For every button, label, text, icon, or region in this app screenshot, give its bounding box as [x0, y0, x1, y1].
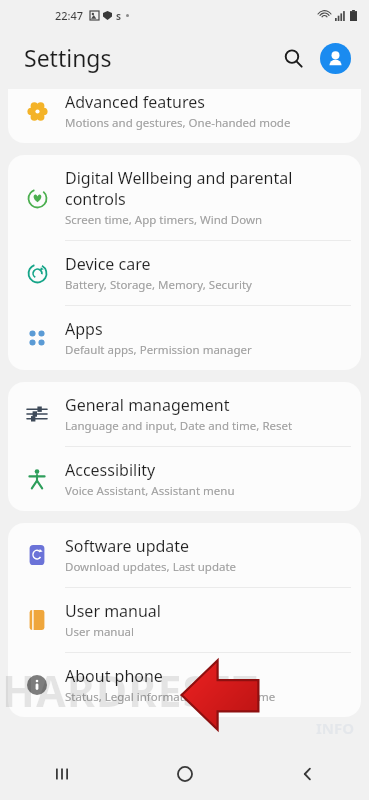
- staticText: Advanced features: [65, 91, 205, 113]
- button[interactable]: User manual: [8, 588, 361, 652]
- button[interactable]: Account: [320, 43, 351, 74]
- staticText: 22:47: [55, 8, 84, 23]
- button[interactable]: Software update: [8, 523, 361, 587]
- staticText: Digital Wellbeing and parental controls: [65, 167, 347, 210]
- button[interactable]: About phone: [8, 653, 361, 717]
- staticText: Download updates, Last update: [65, 559, 237, 575]
- button[interactable]: General management: [8, 382, 361, 446]
- staticText: Device care: [65, 253, 151, 275]
- staticText: Software update: [65, 535, 190, 557]
- button[interactable]: Device care: [8, 241, 361, 305]
- button[interactable]: Recent apps: [38, 750, 86, 798]
- staticText: Accessibility: [65, 459, 156, 481]
- staticText: Motions and gestures, One-handed mode: [65, 115, 291, 131]
- staticText: HARDRESET: [2, 661, 259, 720]
- staticText: Battery, Storage, Memory, Security: [65, 277, 252, 293]
- button[interactable]: Home: [161, 750, 209, 798]
- staticText: About phone: [65, 665, 163, 687]
- staticText: Settings: [24, 42, 112, 73]
- button[interactable]: Digital Wellbeing and parental controls: [8, 155, 361, 240]
- staticText: Language and input, Date and time, Reset: [65, 418, 293, 434]
- staticText: General management: [65, 394, 230, 416]
- button[interactable]: Search: [276, 41, 310, 75]
- staticText: INFO: [316, 718, 355, 738]
- staticText: Status, Legal information, Phone name: [65, 689, 276, 705]
- staticText: User manual: [65, 600, 161, 622]
- staticText: Voice Assistant, Assistant menu: [65, 483, 235, 499]
- staticText: Screen time, App timers, Wind Down: [65, 212, 263, 228]
- button[interactable]: Advanced features: [8, 89, 361, 143]
- button[interactable]: Back: [284, 750, 332, 798]
- button[interactable]: Apps: [8, 306, 361, 370]
- staticText: S: [116, 10, 121, 22]
- staticText: Default apps, Permission manager: [65, 342, 252, 358]
- staticText: Apps: [65, 318, 103, 340]
- button[interactable]: Accessibility: [8, 447, 361, 511]
- staticText: User manual: [65, 624, 134, 640]
